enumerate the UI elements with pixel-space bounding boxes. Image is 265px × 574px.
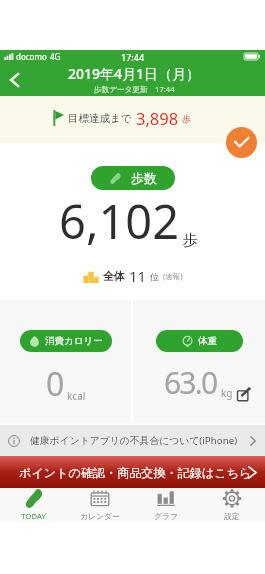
button[interactable]: グラフ [133, 488, 199, 522]
staticText: 目標達成まで [68, 112, 132, 125]
staticText: 17:44 [121, 51, 145, 63]
staticText: カレンダー [80, 511, 120, 521]
staticText: 消費カロリー [45, 335, 103, 347]
button[interactable]: Back [0, 66, 28, 94]
button[interactable]: 健康ポイントアプリの不具合について(iPhone) [0, 425, 265, 456]
staticText: グラフ [154, 511, 178, 521]
staticText: 歩数 [131, 170, 157, 186]
staticText: 位 [150, 271, 159, 282]
button[interactable]: Goal achieved [226, 127, 257, 158]
button[interactable]: カレンダー [67, 488, 133, 522]
staticText: 歩 [183, 231, 198, 250]
button[interactable]: TODAY [0, 488, 67, 522]
staticText: 0 [46, 362, 63, 406]
button[interactable]: 消費カロリー [0, 300, 131, 423]
staticText: 11 [129, 266, 147, 286]
staticText: 6,102 [59, 189, 180, 253]
staticText: 設定 [224, 511, 240, 521]
staticText: 2019年4月1日（月） [68, 64, 201, 83]
staticText: 健康ポイントアプリの不具合について(iPhone) [30, 434, 238, 447]
button[interactable]: ポイントの確認・商品交換・記録はこちら [0, 456, 265, 488]
staticText: docomo [16, 51, 47, 62]
staticText: 4G [50, 51, 61, 62]
staticText: 全体 [103, 269, 125, 283]
staticText: kg [221, 386, 233, 400]
staticText: 63.0 [164, 362, 217, 403]
button[interactable]: 歩数 [91, 166, 175, 190]
staticText: 歩数データ更新 17:44 [94, 84, 175, 94]
staticText: 体重 [198, 335, 217, 347]
staticText: 歩 [182, 113, 191, 124]
button[interactable]: 体重 [133, 300, 265, 423]
button[interactable]: 設定 [199, 488, 265, 522]
staticText: ポイントの確認・商品交換・記録はこちら [19, 465, 252, 480]
staticText: TODAY [21, 511, 46, 522]
staticText: (速報) [163, 271, 183, 281]
staticText: kcal [67, 389, 86, 403]
staticText: 3,898 [136, 107, 179, 129]
